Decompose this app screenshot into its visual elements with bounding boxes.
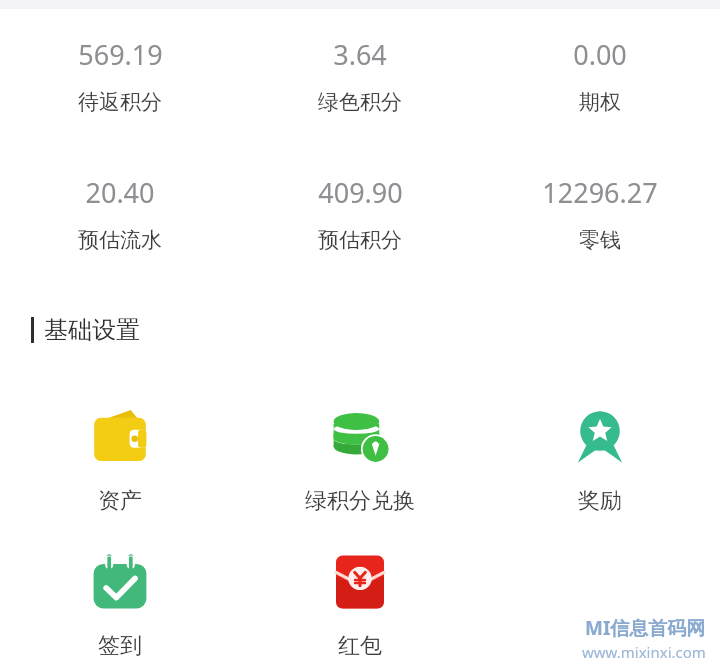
- staticText: 资产: [98, 487, 142, 515]
- button[interactable]: 奖励: [480, 407, 720, 515]
- button[interactable]: 基础设置: [0, 315, 720, 345]
- staticText: 期权: [579, 89, 621, 115]
- staticText: 20.40: [85, 174, 155, 211]
- button[interactable]: 12296.27: [480, 174, 720, 253]
- staticText: 预估流水: [78, 227, 162, 253]
- staticText: 零钱: [579, 227, 621, 253]
- staticText: 奖励: [578, 487, 622, 515]
- staticText: 绿色积分: [318, 89, 402, 115]
- button[interactable]: 绿积分兑换: [240, 407, 480, 515]
- staticText: 红包: [338, 632, 382, 660]
- staticText: 3.64: [333, 36, 387, 73]
- staticText: 569.19: [78, 36, 163, 73]
- button[interactable]: 0.00: [480, 36, 720, 115]
- button[interactable]: 3.64: [240, 36, 480, 115]
- staticText: 409.90: [318, 174, 403, 211]
- button[interactable]: 资产: [0, 407, 240, 515]
- button[interactable]: 红包: [240, 552, 480, 660]
- staticText: 绿积分兑换: [305, 487, 415, 515]
- staticText: 基础设置: [44, 315, 140, 345]
- staticText: MI信息首码网: [585, 615, 706, 641]
- button[interactable]: 20.40: [0, 174, 240, 253]
- button[interactable]: 签到: [0, 552, 240, 660]
- staticText: 0.00: [573, 36, 627, 73]
- button[interactable]: 409.90: [240, 174, 480, 253]
- staticText: 待返积分: [78, 89, 162, 115]
- staticText: 预估积分: [318, 227, 402, 253]
- staticText: www.mixinxi.com: [582, 642, 706, 662]
- button[interactable]: 569.19: [0, 36, 240, 115]
- staticText: 12296.27: [542, 174, 658, 211]
- staticText: 签到: [98, 632, 142, 660]
